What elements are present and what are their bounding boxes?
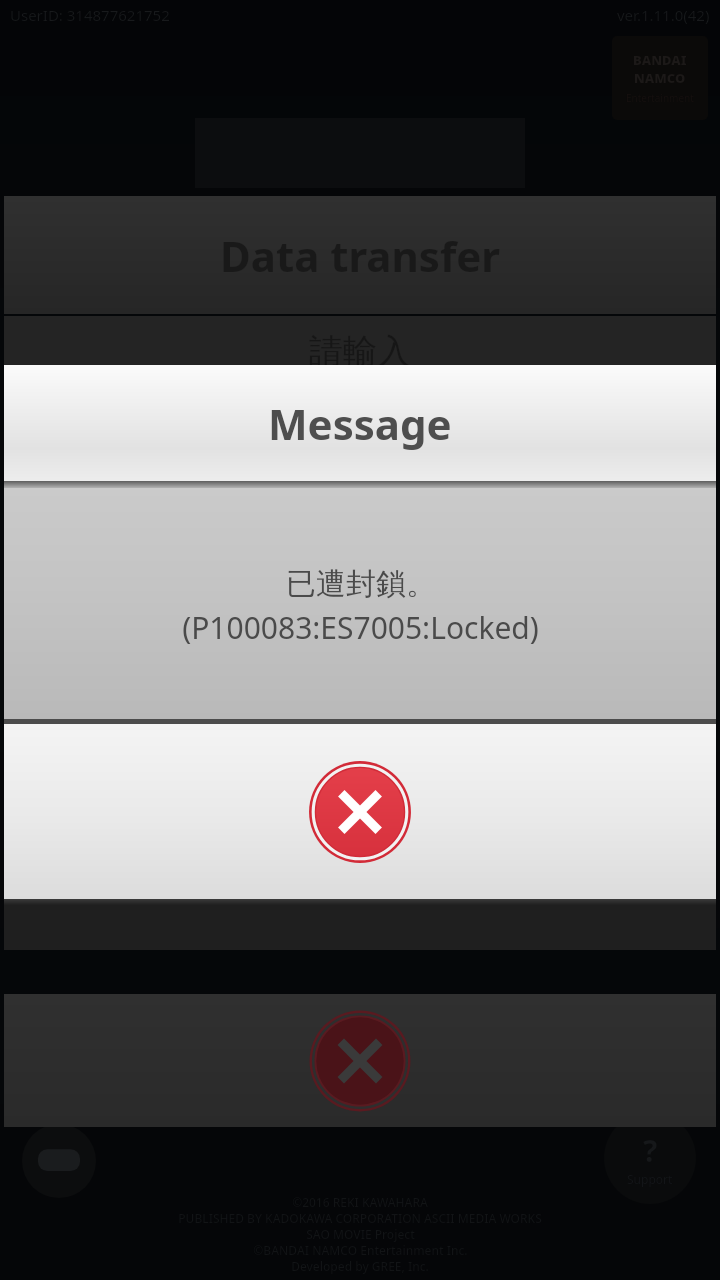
button[interactable]: Close — [308, 760, 412, 864]
staticText: Message — [268, 395, 452, 452]
staticText: ? — [643, 1130, 658, 1171]
staticText: Developed by GREE, Inc. — [291, 1258, 429, 1274]
staticText: 已遭封鎖。 — [286, 565, 436, 603]
button[interactable]: Game menu — [22, 1124, 96, 1198]
staticText: ver.1.11.0(42) — [617, 5, 710, 25]
staticText: PUBLISHED BY KADOKAWA CORPORATION ASCII … — [178, 1210, 542, 1226]
staticText: 請輸入 — [309, 330, 411, 373]
staticText: NAMCO — [634, 69, 686, 87]
staticText: ©2016 REKI KAWAHARA — [292, 1194, 428, 1210]
button[interactable]: Support — [604, 1112, 696, 1204]
staticText: (P100083:ES7005:Locked) — [182, 607, 539, 648]
staticText: SAO MOVIE Project — [306, 1226, 415, 1242]
staticText: ©BANDAI NAMCO Entertainment Inc. — [253, 1242, 468, 1258]
staticText: 繼承碼及密碼。 — [262, 381, 458, 416]
button[interactable]: Close — [308, 1009, 412, 1113]
staticText: UserID: 314877621752 — [10, 5, 170, 25]
staticText: Support — [627, 1171, 673, 1187]
staticText: Data transfer — [220, 227, 501, 284]
staticText: BANDAI — [633, 51, 687, 69]
